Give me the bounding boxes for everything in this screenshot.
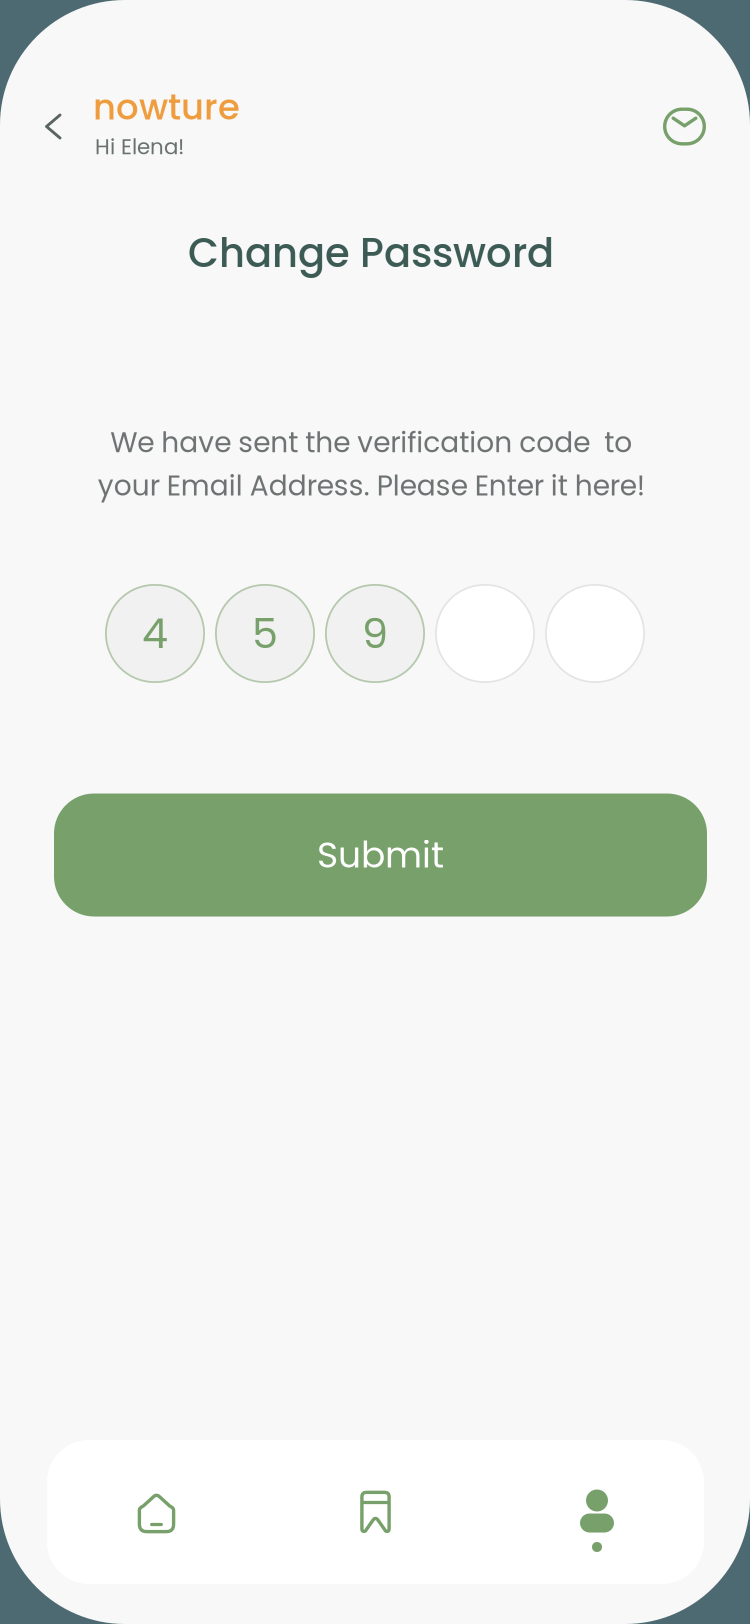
button[interactable]: Digit 9 [325, 584, 425, 683]
staticText: We have sent the verification code to yo… [97, 423, 644, 505]
button[interactable]: Saved [266, 1440, 485, 1584]
button[interactable]: Profile [485, 1440, 704, 1584]
staticText: 5 [252, 605, 278, 662]
staticText: 9 [362, 605, 388, 662]
button[interactable]: Digit 4 [105, 584, 205, 683]
button[interactable]: Home [47, 1440, 266, 1584]
staticText: Hi Elena! [95, 132, 184, 162]
button[interactable]: Empty digit [435, 584, 535, 683]
button[interactable]: Submit [54, 793, 707, 916]
button[interactable]: Mail [653, 95, 715, 157]
staticText: Submit [317, 830, 444, 880]
staticText: nowture [93, 82, 240, 132]
button[interactable]: Back [25, 98, 81, 154]
button[interactable]: Empty digit [545, 584, 645, 683]
button[interactable]: Digit 5 [215, 584, 315, 683]
staticText: 4 [142, 605, 168, 662]
staticText: Change Password [188, 225, 554, 281]
